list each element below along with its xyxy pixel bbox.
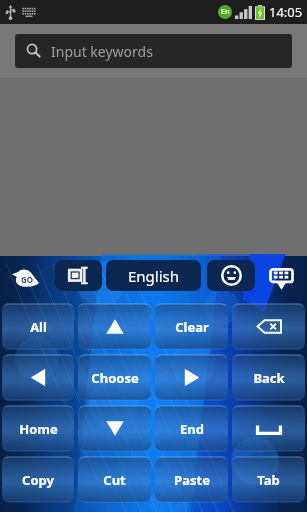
staticText: Choose: [91, 369, 139, 387]
staticText: Paste: [174, 471, 210, 489]
button[interactable]: Space: [232, 406, 305, 451]
button[interactable]: Home: [2, 406, 74, 451]
button[interactable]: Switch input: [55, 260, 102, 291]
button[interactable]: Clear: [155, 304, 228, 349]
button[interactable]: Left: [2, 355, 74, 400]
staticText: GO: [21, 274, 34, 285]
button[interactable]: End: [155, 406, 228, 451]
staticText: All: [30, 318, 47, 336]
button[interactable]: Back: [232, 355, 305, 400]
button[interactable]: GO Keyboard menu: [12, 269, 39, 288]
button[interactable]: Hide keyboard: [269, 267, 294, 291]
staticText: Cut: [103, 471, 126, 489]
staticText: Back: [253, 369, 285, 387]
staticText: Copy: [22, 471, 54, 489]
button[interactable]: Input keywords: [15, 34, 292, 68]
button[interactable]: Emoji: [207, 260, 255, 291]
button[interactable]: Right: [155, 355, 228, 400]
staticText: Input keywords: [51, 42, 153, 61]
button[interactable]: Copy: [2, 457, 74, 502]
staticText: Tab: [257, 471, 280, 489]
staticText: Clear: [175, 318, 209, 336]
button[interactable]: Down: [78, 406, 151, 451]
button[interactable]: Paste: [155, 457, 228, 502]
button[interactable]: Backspace: [232, 304, 305, 349]
staticText: En: [221, 7, 230, 17]
staticText: English: [128, 266, 180, 286]
button[interactable]: Up: [78, 304, 151, 349]
button[interactable]: Choose: [78, 355, 151, 400]
button[interactable]: All: [2, 304, 74, 349]
button[interactable]: Tab: [232, 457, 305, 502]
button[interactable]: Cut: [78, 457, 151, 502]
staticText: End: [180, 420, 204, 438]
staticText: Home: [19, 420, 58, 438]
button[interactable]: English: [106, 260, 201, 291]
staticText: 14:05: [269, 3, 303, 21]
